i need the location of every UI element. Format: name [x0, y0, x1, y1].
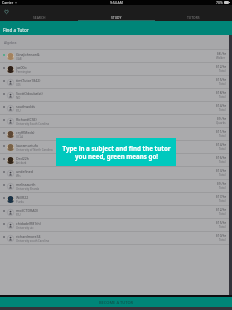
staticText: Total [219, 69, 226, 73]
staticText: $17/hr [216, 195, 226, 199]
staticText: Ari dark [16, 161, 27, 165]
staticText: UAB [16, 57, 22, 61]
staticText: $9 /hr [217, 182, 226, 186]
staticText: Pennington [16, 70, 32, 74]
staticText: Total [219, 134, 226, 138]
staticText: Find a Tutor [3, 27, 29, 33]
button[interactable]: ScottOdouba(st) [0, 89, 232, 101]
button[interactable]: chidade(R81th) [0, 219, 232, 231]
staticText: ScottOdouba(st) [16, 91, 43, 96]
staticText: Total [219, 212, 226, 216]
staticText: Ded22h [16, 156, 29, 161]
staticText: $15/hr [216, 78, 226, 82]
button[interactable]: richardmore34 [0, 232, 232, 244]
staticText: Carrier [2, 0, 14, 5]
staticText: melissaurth [16, 182, 36, 187]
staticText: 9:54 AM [110, 0, 123, 5]
staticText: Quarks [216, 121, 226, 125]
staticText: tim(Tutor1842) [16, 78, 41, 83]
button[interactable]: melissaurth [0, 180, 232, 192]
button[interactable]: tim(Tutor1842) [0, 76, 232, 88]
staticText: Walker [216, 56, 226, 60]
staticText: Wis [16, 174, 21, 178]
staticText: Total [219, 186, 226, 190]
staticText: Total [219, 160, 226, 164]
button[interactable]: STUDY [78, 5, 155, 21]
button[interactable]: WillR22 [0, 193, 232, 205]
staticText: University Sharda [16, 187, 40, 191]
staticText: moi(CTDRAD) [16, 208, 39, 213]
button[interactable]: TUTORS [155, 5, 232, 21]
staticText: lauramurtufo [16, 143, 38, 148]
staticText: cryff(Meds) [16, 130, 35, 135]
button[interactable]: Ded22h [0, 154, 232, 166]
staticText: southwolds [16, 104, 35, 109]
staticText: undefined [16, 169, 33, 174]
button[interactable]: SEARCH [0, 5, 78, 21]
staticText: $14/hr [216, 143, 226, 147]
staticText: BECOME A TUTOR [99, 300, 134, 305]
staticText: Type in a subject and find the tutor you… [62, 144, 171, 161]
staticText: Total [219, 238, 226, 242]
staticText: $10/hr [216, 234, 226, 238]
button[interactable]: southwolds [0, 102, 232, 114]
button[interactable]: BECOME A TUTOR [0, 297, 232, 307]
staticText: Purdu [16, 200, 24, 204]
staticText: University of North Carolina [16, 148, 53, 152]
staticText: jas00o [16, 65, 27, 70]
staticText: $15/hr [216, 221, 226, 225]
staticText: TUTORS [187, 15, 200, 19]
staticText: $11/hr [216, 130, 226, 134]
button[interactable]: Richard(CSE) [0, 115, 232, 127]
staticText: $12/hr [216, 208, 226, 212]
staticText: FIU [16, 213, 21, 217]
button[interactable]: Find a Tutor [0, 21, 232, 35]
button[interactable]: lauramurtufo [0, 141, 232, 153]
staticText: GinaJohnson& [16, 52, 40, 57]
staticText: $14/hr [216, 104, 226, 108]
button[interactable]: jas00o [0, 63, 232, 75]
staticText: WillR22 [16, 195, 29, 200]
staticText: UIS [16, 83, 21, 87]
staticText: FIU [16, 109, 21, 113]
staticText: chidade(R81th) [16, 221, 41, 226]
staticText: Total [219, 95, 226, 99]
staticText: richardmore34 [16, 234, 41, 239]
button[interactable]: moi(CTDRAD) [0, 206, 232, 218]
staticText: Algebra [4, 40, 17, 45]
staticText: Richard(CSE) [16, 117, 37, 122]
staticText: UCLA [16, 135, 24, 139]
staticText: $9 /hr [217, 117, 226, 121]
staticText: ND [16, 96, 21, 100]
staticText: Total [219, 173, 226, 177]
staticText: 70% [216, 0, 223, 5]
staticText: $16/hr [216, 156, 226, 160]
staticText: Total [219, 225, 226, 229]
button[interactable]: undefined [0, 167, 232, 179]
staticText: Total [219, 147, 226, 151]
button[interactable]: Favourites [3, 8, 9, 14]
staticText: University South Carolina [16, 122, 50, 126]
staticText: $18/hr [216, 91, 226, 95]
staticText: $13/hr [216, 169, 226, 173]
staticText: University uic [16, 226, 34, 230]
staticText: University south Carolina [16, 239, 49, 243]
staticText: $8 /hr [217, 52, 226, 56]
staticText: Total [219, 82, 226, 86]
staticText: STUDY [111, 15, 122, 19]
staticText: Total [219, 199, 226, 203]
staticText: Total [219, 108, 226, 112]
button[interactable]: cryff(Meds) [0, 128, 232, 140]
button[interactable]: GinaJohnson& [0, 50, 232, 62]
staticText: $12/hr [216, 65, 226, 69]
staticText: SEARCH [33, 15, 46, 19]
